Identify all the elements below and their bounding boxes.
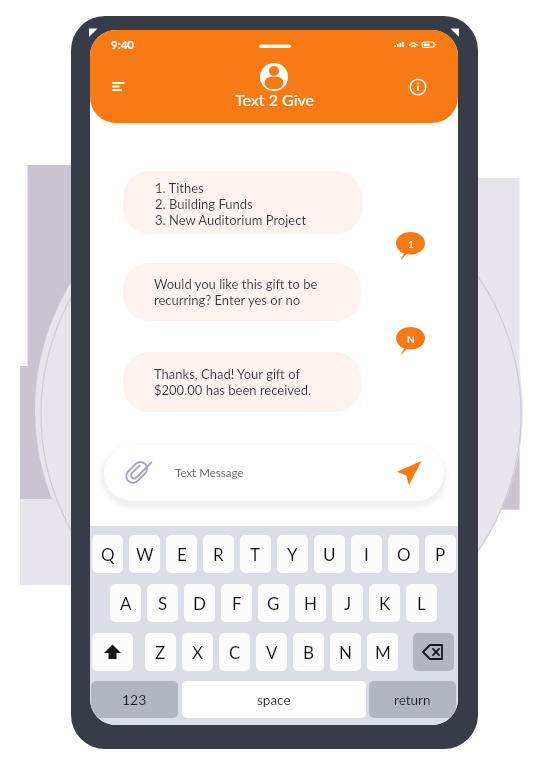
button[interactable]: Send <box>395 458 425 488</box>
button[interactable]: J <box>332 584 363 622</box>
staticText: C <box>229 642 241 662</box>
staticText: recurring? Enter yes or no <box>154 292 301 308</box>
staticText: W <box>136 544 154 564</box>
button[interactable]: P <box>425 535 456 573</box>
staticText: M <box>375 642 391 662</box>
staticText: N <box>407 333 415 345</box>
staticText: return <box>394 692 431 708</box>
button[interactable]: N <box>330 633 361 671</box>
button[interactable]: X <box>182 633 213 671</box>
button[interactable]: Would you like this gift to be <box>123 263 361 321</box>
staticText: 1. Tithes <box>155 180 204 196</box>
button[interactable]: R <box>203 535 234 573</box>
staticText: A <box>120 593 132 613</box>
staticText: space <box>257 692 291 708</box>
button[interactable]: D <box>184 584 215 622</box>
button[interactable]: Z <box>145 633 176 671</box>
staticText: O <box>397 544 411 564</box>
button[interactable]: G <box>258 584 289 622</box>
button[interactable]: H <box>295 584 326 622</box>
staticText: 123 <box>122 691 147 708</box>
button[interactable]: W <box>129 535 160 573</box>
staticText: Q <box>101 544 115 564</box>
staticText: Y <box>287 544 298 564</box>
staticText: Text Message <box>175 466 244 480</box>
staticText: Text 2 Give <box>235 90 314 109</box>
staticText: P <box>435 544 446 564</box>
staticText: S <box>158 593 168 613</box>
button[interactable]: U <box>314 535 345 573</box>
button[interactable]: Text Message <box>104 445 444 501</box>
button[interactable]: I <box>351 535 382 573</box>
button[interactable]: 123 <box>91 681 178 718</box>
button[interactable]: space <box>182 681 366 718</box>
button[interactable]: Thanks, Chad! Your gift of <box>123 352 361 412</box>
staticText: Thanks, Chad! Your gift of <box>154 366 301 382</box>
staticText: K <box>379 593 391 613</box>
staticText: L <box>417 593 426 613</box>
staticText: F <box>232 593 242 613</box>
staticText: J <box>344 593 352 613</box>
staticText: H <box>304 593 317 613</box>
button[interactable]: Q <box>92 535 123 573</box>
staticText: Z <box>155 642 166 662</box>
button[interactable]: N <box>396 327 428 359</box>
staticText: 2. Building Funds <box>155 196 253 212</box>
button[interactable]: V <box>256 633 287 671</box>
button[interactable]: M <box>367 633 398 671</box>
staticText: V <box>266 642 278 662</box>
button[interactable]: 1 <box>396 232 428 264</box>
button[interactable]: K <box>369 584 400 622</box>
button[interactable]: 1. Tithes <box>123 171 362 234</box>
staticText: 3. New Auditorium Project <box>155 212 307 228</box>
button[interactable]: Y <box>277 535 308 573</box>
button[interactable]: B <box>293 633 324 671</box>
button[interactable]: Shift <box>92 633 133 671</box>
staticText: U <box>323 544 336 564</box>
button[interactable]: Menu <box>100 70 128 101</box>
button[interactable]: L <box>406 584 437 622</box>
staticText: T <box>250 544 261 564</box>
staticText: D <box>193 593 206 613</box>
staticText: X <box>192 642 204 662</box>
button[interactable]: O <box>388 535 419 573</box>
staticText: E <box>177 544 187 564</box>
staticText: $200.00 has been received. <box>154 382 312 398</box>
button[interactable]: T <box>240 535 271 573</box>
staticText: 9:40 <box>111 38 134 52</box>
button[interactable]: return <box>369 681 456 718</box>
staticText: 1 <box>408 238 414 250</box>
button[interactable]: S <box>147 584 178 622</box>
button[interactable]: Backspace <box>413 633 454 671</box>
staticText: I <box>364 544 369 564</box>
staticText: Would you like this gift to be <box>154 276 318 292</box>
button[interactable]: Info <box>406 75 430 99</box>
button[interactable]: F <box>221 584 252 622</box>
staticText: G <box>267 593 280 613</box>
staticText: R <box>213 544 224 564</box>
button[interactable]: C <box>219 633 250 671</box>
staticText: B <box>303 642 314 662</box>
staticText: N <box>339 642 352 662</box>
button[interactable]: A <box>110 584 141 622</box>
button[interactable]: E <box>166 535 197 573</box>
